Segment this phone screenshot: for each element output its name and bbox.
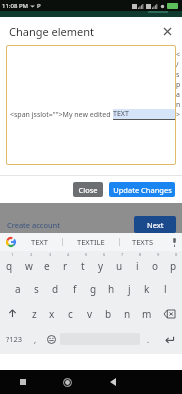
staticText: 1	[11, 252, 14, 257]
staticText: 3	[49, 252, 52, 257]
staticText: Next	[147, 220, 164, 230]
button[interactable]: 8	[128, 251, 146, 276]
staticText: TEXTS	[132, 237, 154, 247]
staticText: 6	[103, 252, 106, 257]
button[interactable]: Home	[45, 370, 90, 394]
staticText: Update Changes	[113, 185, 172, 195]
button[interactable]: TEXTS	[120, 233, 166, 251]
button[interactable]: TEXTILE	[63, 233, 119, 251]
button[interactable]: l	[156, 276, 174, 301]
button[interactable]: s	[27, 276, 46, 301]
staticText: P	[37, 2, 41, 10]
button[interactable]: Backspace	[156, 301, 182, 326]
staticText: 11:08 PM	[2, 2, 28, 10]
button[interactable]: a	[8, 276, 27, 301]
button[interactable]: Update Changes	[109, 182, 175, 197]
staticText: 7	[121, 252, 124, 257]
button[interactable]: <span jsslot="">My new edited	[6, 45, 176, 165]
button[interactable]: g	[84, 276, 102, 301]
button[interactable]: Enter	[157, 326, 182, 352]
staticText: r	[63, 259, 68, 273]
button[interactable]: d	[46, 276, 65, 301]
staticText: Change element	[9, 24, 95, 39]
button[interactable]: Back	[90, 370, 136, 394]
staticText: t	[81, 259, 85, 273]
button[interactable]: 5	[74, 251, 92, 276]
button[interactable]: z	[25, 301, 43, 326]
staticText: 8	[139, 252, 142, 257]
staticText: s	[34, 282, 39, 296]
staticText: h	[108, 282, 115, 296]
button[interactable]: ,	[28, 326, 43, 352]
button[interactable]: Create account	[7, 220, 60, 230]
staticText: a	[15, 282, 21, 296]
staticText: z	[32, 307, 37, 321]
button[interactable]: .	[140, 326, 157, 352]
staticText: 2	[30, 252, 33, 257]
staticText: 5	[85, 252, 88, 257]
staticText: d	[52, 282, 59, 296]
button[interactable]: k	[138, 276, 156, 301]
staticText: TEXT	[31, 237, 48, 247]
button[interactable]: Emoji	[43, 326, 60, 352]
button[interactable]: Close dialog	[158, 22, 176, 40]
button[interactable]: Voice input	[166, 233, 182, 251]
button[interactable]: c	[61, 301, 80, 326]
button[interactable]: n	[118, 301, 137, 326]
staticText: 0	[175, 252, 178, 257]
staticText: u	[116, 259, 123, 273]
button[interactable]: Close	[73, 182, 103, 197]
button[interactable]: 0	[164, 251, 182, 276]
staticText: ?123	[6, 334, 23, 344]
staticText: i	[136, 259, 139, 273]
staticText: c	[68, 307, 73, 321]
staticText: <span jsslot="">My new edited	[10, 110, 113, 120]
staticText: q	[6, 259, 13, 273]
button[interactable]: 4	[56, 251, 74, 276]
staticText: ,	[34, 334, 37, 345]
staticText: l	[164, 282, 167, 296]
staticText: .	[147, 334, 150, 345]
staticText: g	[90, 282, 97, 296]
staticText: TEXTILE	[77, 237, 105, 247]
button[interactable]: 6	[92, 251, 110, 276]
staticText: p	[170, 259, 177, 273]
staticText: k	[144, 282, 150, 296]
staticText: TEXT	[113, 109, 129, 119]
button[interactable]: ?123	[0, 326, 28, 352]
staticText: 9	[157, 252, 160, 257]
staticText: 4	[67, 252, 70, 257]
staticText: j	[128, 282, 131, 296]
button[interactable]: 1	[0, 251, 19, 276]
button[interactable]: m	[137, 301, 156, 326]
staticText: n	[124, 307, 131, 321]
button[interactable]: Shift	[0, 301, 25, 326]
staticText: Close	[78, 185, 98, 195]
button[interactable]: 2	[19, 251, 38, 276]
staticText: e	[44, 259, 50, 273]
button[interactable]: 9	[146, 251, 164, 276]
staticText: o	[152, 259, 159, 273]
button[interactable]: x	[43, 301, 61, 326]
button[interactable]: b	[99, 301, 118, 326]
staticText: b	[105, 307, 112, 321]
button[interactable]: 3	[38, 251, 56, 276]
button[interactable]: j	[120, 276, 138, 301]
button[interactable]: v	[80, 301, 99, 326]
staticText: v	[87, 307, 93, 321]
button[interactable]: Recent apps	[0, 370, 45, 394]
button[interactable]: TEXT	[16, 233, 62, 251]
button[interactable]: h	[102, 276, 120, 301]
staticText: y	[98, 259, 104, 273]
button[interactable]: f	[65, 276, 84, 301]
button[interactable]: 7	[110, 251, 128, 276]
staticText: x	[49, 307, 55, 321]
staticText: w	[25, 259, 33, 273]
staticText: f	[73, 282, 77, 296]
staticText: m	[142, 307, 152, 321]
button[interactable]: Next	[134, 216, 176, 233]
